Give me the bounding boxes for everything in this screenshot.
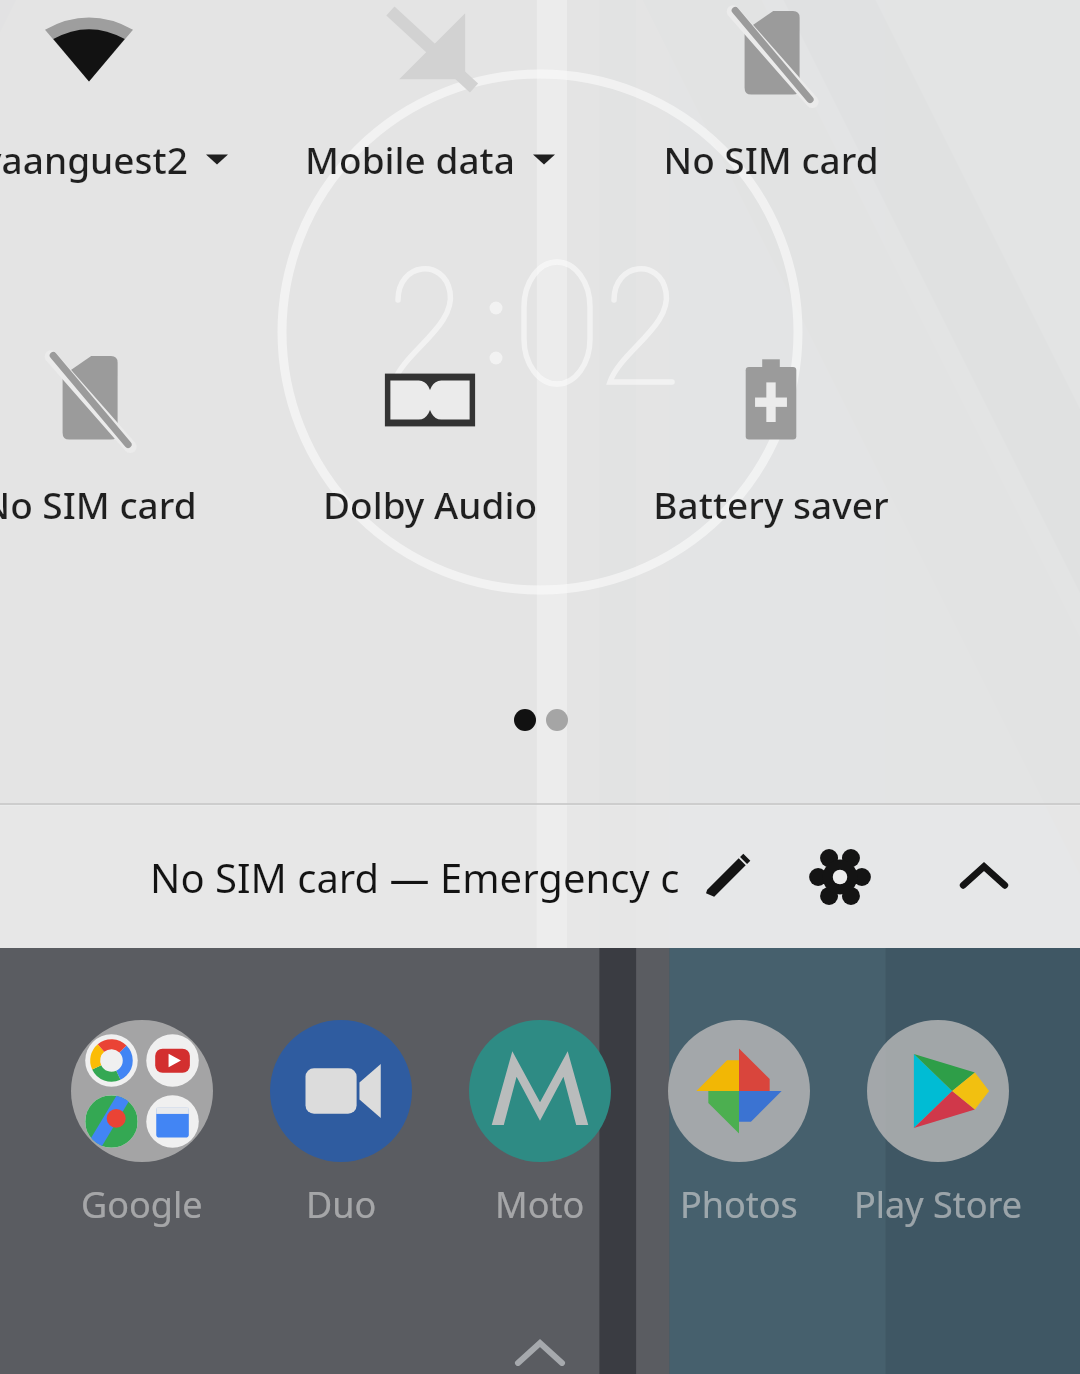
- button[interactable]: Dolby Audio: [259, 345, 600, 575]
- staticText: Dolby Audio: [323, 479, 537, 529]
- button[interactable]: Settings: [768, 805, 911, 948]
- staticText: No SIM card: [0, 479, 197, 529]
- button[interactable]: Collapse: [912, 805, 1055, 948]
- button[interactable]: No SIM card: [0, 345, 259, 575]
- button[interactable]: Edit: [655, 805, 798, 948]
- button[interactable]: Wi-Fi igyaanguest2: [0, 0, 259, 230]
- staticText: Google: [81, 1180, 203, 1229]
- staticText: igyaanguest2: [0, 134, 188, 184]
- button[interactable]: Mobile data: [259, 0, 600, 230]
- button[interactable]: Google: [42, 1020, 242, 1250]
- button[interactable]: Battery saver: [600, 345, 941, 575]
- button[interactable]: No SIM card — Emergency c: [150, 805, 710, 948]
- staticText: Photos: [680, 1180, 798, 1229]
- staticText: Duo: [306, 1180, 377, 1229]
- staticText: Battery saver: [653, 479, 889, 529]
- staticText: Play Store: [854, 1180, 1022, 1229]
- staticText: Mobile data: [305, 134, 515, 184]
- button[interactable]: No SIM card: [600, 0, 941, 230]
- button[interactable]: Moto: [440, 1020, 640, 1250]
- button[interactable]: Photos: [639, 1020, 839, 1250]
- button[interactable]: Duo: [241, 1020, 441, 1250]
- staticText: No SIM card: [663, 134, 879, 184]
- button[interactable]: Play Store: [838, 1020, 1038, 1250]
- staticText: No SIM card — Emergency c: [150, 850, 680, 904]
- staticText: Moto: [495, 1180, 585, 1229]
